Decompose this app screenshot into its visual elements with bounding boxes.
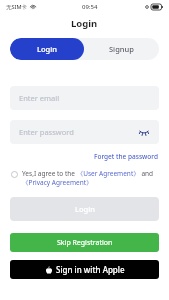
- staticText: Sign in with Apple: [56, 264, 125, 275]
- button[interactable]: Skip Registration: [10, 233, 159, 252]
- staticText: Forget the password: [94, 152, 158, 161]
- button[interactable]: Enter email: [10, 86, 159, 110]
- button[interactable]: Show password: [138, 126, 150, 138]
- staticText: Enter password: [19, 127, 74, 137]
- staticText: 无SIM卡: [6, 3, 28, 11]
- button[interactable]: Enter password: [10, 120, 159, 144]
- staticText: Login: [37, 44, 57, 54]
- button[interactable]: Login: [10, 38, 84, 60]
- staticText: 09:54: [82, 3, 98, 11]
- staticText: Yes,I agree to the 《User Agreement》 and …: [22, 169, 159, 187]
- staticText: Enter email: [19, 93, 60, 103]
- button[interactable]: Yes,I agree to the 《User Agreement》 and …: [10, 169, 159, 187]
- button[interactable]: Forget the password: [93, 151, 159, 162]
- button[interactable]: Login: [10, 197, 159, 221]
- button[interactable]: Sign in with Apple: [10, 260, 159, 279]
- button[interactable]: Signup: [84, 38, 159, 60]
- staticText: Login: [71, 17, 98, 30]
- staticText: Login: [75, 204, 95, 214]
- staticText: Skip Registration: [57, 238, 113, 248]
- staticText: Signup: [109, 44, 134, 54]
